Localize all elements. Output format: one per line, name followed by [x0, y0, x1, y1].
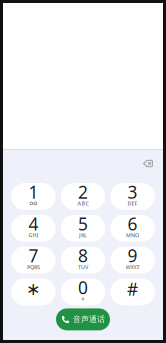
staticText: 2	[78, 180, 88, 203]
button[interactable]: 3	[110, 183, 155, 210]
staticText: WXYZ	[126, 264, 140, 271]
staticText: GHI	[28, 232, 38, 239]
button[interactable]: 8	[61, 247, 105, 274]
button[interactable]: 7	[11, 247, 56, 274]
staticText: 7	[28, 244, 38, 267]
staticText: #	[127, 277, 138, 300]
staticText: TUV	[78, 264, 88, 271]
staticText: 音声通话	[73, 314, 105, 324]
staticText: 0	[78, 276, 88, 299]
staticText: JKL	[79, 232, 87, 239]
button[interactable]: 6	[110, 215, 155, 242]
staticText: ABC	[77, 200, 88, 207]
staticText: 1	[28, 180, 38, 203]
button[interactable]: #	[110, 278, 155, 305]
staticText: ∗	[26, 279, 41, 299]
button[interactable]: 音声通话	[56, 308, 110, 330]
staticText: 6	[128, 212, 138, 235]
staticText: MNO	[126, 232, 139, 239]
button[interactable]: 1	[11, 183, 56, 210]
staticText: 9	[128, 244, 138, 267]
staticText: PQRS	[27, 264, 40, 271]
staticText: 5	[78, 212, 88, 235]
button[interactable]: 2	[61, 183, 105, 210]
staticText: 8	[78, 244, 88, 267]
staticText: DEF	[128, 200, 138, 207]
button[interactable]: 4	[11, 215, 56, 242]
button[interactable]: 5	[61, 215, 105, 242]
staticText: 4	[28, 212, 38, 235]
staticText: +	[81, 294, 85, 303]
button[interactable]: Delete	[136, 152, 160, 174]
button[interactable]: 9	[110, 247, 155, 274]
button[interactable]: ∗	[11, 278, 56, 305]
button[interactable]: 0	[61, 278, 105, 305]
staticText: 3	[128, 180, 138, 203]
